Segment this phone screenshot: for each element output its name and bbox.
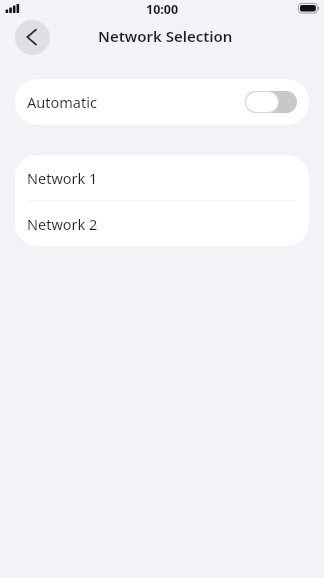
button[interactable]: Automatic xyxy=(15,79,309,125)
button[interactable]: Back xyxy=(15,20,50,55)
staticText: Network 1 xyxy=(27,168,98,188)
button[interactable]: Network 1 xyxy=(15,155,309,200)
staticText: Network Selection xyxy=(98,26,233,46)
button[interactable]: Automatic toggle xyxy=(245,91,297,113)
staticText: 10:00 xyxy=(146,1,179,18)
staticText: Network 2 xyxy=(27,214,98,234)
staticText: Automatic xyxy=(27,92,97,112)
button[interactable]: Network 2 xyxy=(15,201,309,246)
